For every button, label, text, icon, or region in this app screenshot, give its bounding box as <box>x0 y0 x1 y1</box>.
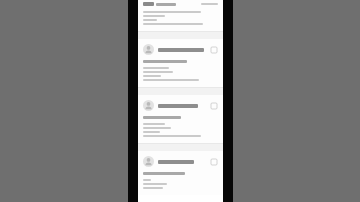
button[interactable]: More options <box>210 102 218 110</box>
button[interactable]: More options <box>210 158 218 166</box>
button[interactable]: Profile photo <box>143 156 154 167</box>
button[interactable]: Profile photo <box>138 95 223 143</box>
button[interactable]: Profile photo <box>143 100 154 111</box>
button[interactable]: Profile photo <box>138 151 223 195</box>
button[interactable]: Profile photo <box>143 44 154 55</box>
button[interactable]: More options <box>210 46 218 54</box>
button[interactable] <box>138 0 223 31</box>
button[interactable]: Profile photo <box>138 39 223 87</box>
